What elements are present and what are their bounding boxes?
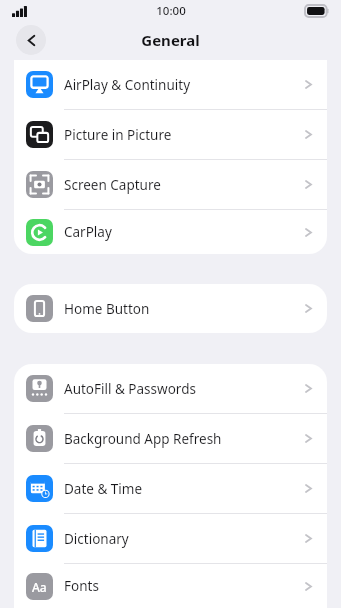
staticText: Background App Refresh: [64, 430, 304, 448]
button[interactable]: Home Button: [14, 284, 327, 333]
button[interactable]: Screen Capture: [14, 160, 327, 209]
staticText: 10:00: [156, 3, 186, 19]
staticText: Date & Time: [64, 480, 304, 498]
staticText: Fonts: [64, 577, 304, 595]
button[interactable]: CarPlay: [14, 210, 327, 254]
button[interactable]: AirPlay & Continuity: [14, 60, 327, 109]
staticText: General: [141, 30, 200, 50]
staticText: Aa: [32, 579, 47, 595]
button[interactable]: Aa: [14, 564, 327, 608]
staticText: Dictionary: [64, 530, 304, 548]
staticText: Screen Capture: [64, 176, 304, 194]
staticText: AirPlay & Continuity: [64, 76, 304, 94]
button[interactable]: AutoFill & Passwords: [14, 364, 327, 413]
staticText: CarPlay: [64, 223, 304, 241]
button[interactable]: Picture in Picture: [14, 110, 327, 159]
button[interactable]: Date & Time: [14, 464, 327, 513]
button[interactable]: Back: [16, 25, 46, 55]
staticText: AutoFill & Passwords: [64, 380, 304, 398]
staticText: Picture in Picture: [64, 126, 304, 144]
button[interactable]: Dictionary: [14, 514, 327, 563]
staticText: Home Button: [64, 300, 304, 318]
button[interactable]: Background App Refresh: [14, 414, 327, 463]
